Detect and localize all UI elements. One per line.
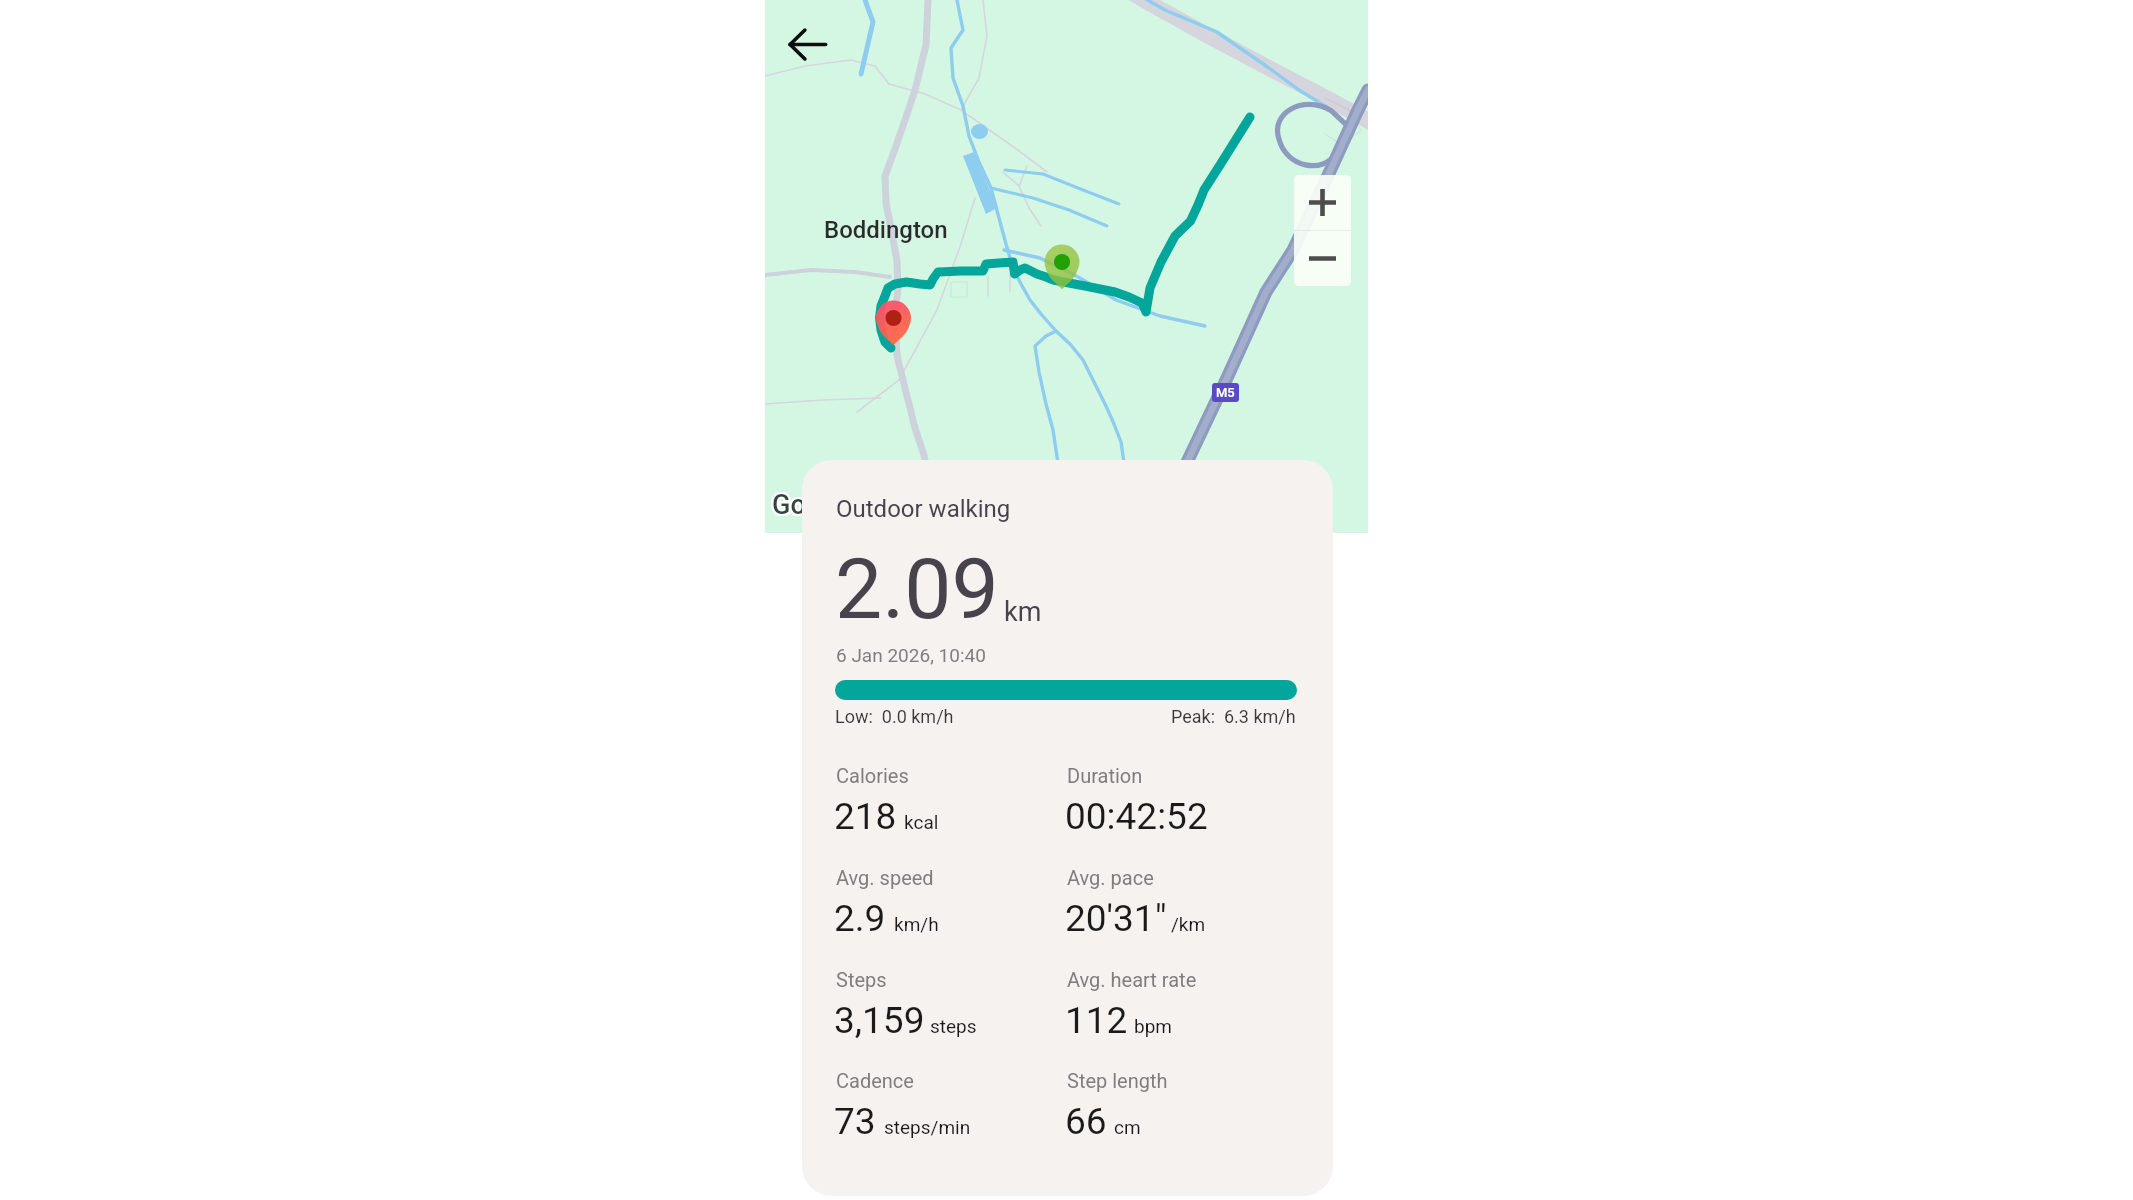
staticText: Google xyxy=(773,487,859,519)
staticText: 20'31" xyxy=(1065,897,1167,940)
staticText: Google xyxy=(770,490,856,522)
staticText: M5 xyxy=(1216,385,1235,400)
staticText: Google xyxy=(772,491,858,523)
staticText: Boddington xyxy=(824,216,948,244)
staticText: kcal xyxy=(904,811,939,833)
staticText: Google xyxy=(770,488,856,520)
button[interactable]: Outdoor walking xyxy=(802,460,1333,1196)
staticText: 6 Jan 2026, 10:40 xyxy=(836,644,986,666)
staticText: Google xyxy=(771,488,857,520)
staticText: Avg. pace xyxy=(1067,866,1154,889)
staticText: Peak: 6.3 km/h xyxy=(1171,706,1296,727)
staticText: 2.9 xyxy=(834,897,886,940)
staticText: Avg. speed xyxy=(836,866,934,889)
staticText: Google xyxy=(771,491,857,523)
staticText: Google xyxy=(772,489,858,521)
staticText: 00:42:52 xyxy=(1065,795,1208,838)
staticText: 112 xyxy=(1065,999,1128,1042)
staticText: km/h xyxy=(894,913,939,935)
staticText: Low: 0.0 km/h xyxy=(835,706,954,727)
staticText: cm xyxy=(1114,1116,1141,1138)
staticText: Google xyxy=(773,490,859,522)
button[interactable]: Zoom out xyxy=(1294,231,1351,286)
staticText: Google xyxy=(772,488,858,520)
staticText: 66 xyxy=(1065,1100,1107,1143)
staticText: Cadence xyxy=(836,1069,914,1092)
staticText: steps/min xyxy=(884,1116,971,1138)
staticText: Google xyxy=(774,490,860,522)
staticText: Google xyxy=(771,490,857,522)
staticText: Google xyxy=(774,489,860,521)
staticText: Google xyxy=(771,489,857,521)
staticText: Google xyxy=(772,489,858,521)
staticText: Avg. heart rate xyxy=(1067,968,1197,991)
staticText: Google xyxy=(772,490,858,522)
staticText: /km xyxy=(1171,913,1206,935)
staticText: Google xyxy=(772,487,858,519)
staticText: Duration xyxy=(1067,764,1143,787)
staticText: Google xyxy=(773,491,859,523)
staticText: Outdoor walking xyxy=(836,495,1011,523)
staticText: bpm xyxy=(1134,1015,1172,1037)
staticText: Google xyxy=(773,488,859,520)
staticText: Google xyxy=(771,487,857,519)
staticText: Google xyxy=(770,489,856,521)
staticText: 3,159 xyxy=(834,999,925,1042)
staticText: steps xyxy=(930,1015,977,1037)
staticText: 218 xyxy=(834,795,897,838)
staticText: Calories xyxy=(836,764,909,787)
staticText: 73 xyxy=(834,1100,876,1143)
staticText: 2.09 xyxy=(835,540,999,638)
staticText: Step length xyxy=(1067,1069,1168,1092)
staticText: Google xyxy=(773,489,859,521)
button[interactable]: Zoom in xyxy=(1294,175,1351,230)
staticText: km xyxy=(1004,596,1042,628)
staticText: Steps xyxy=(836,968,887,991)
staticText: Google xyxy=(774,488,860,520)
button[interactable]: Back xyxy=(776,13,838,75)
